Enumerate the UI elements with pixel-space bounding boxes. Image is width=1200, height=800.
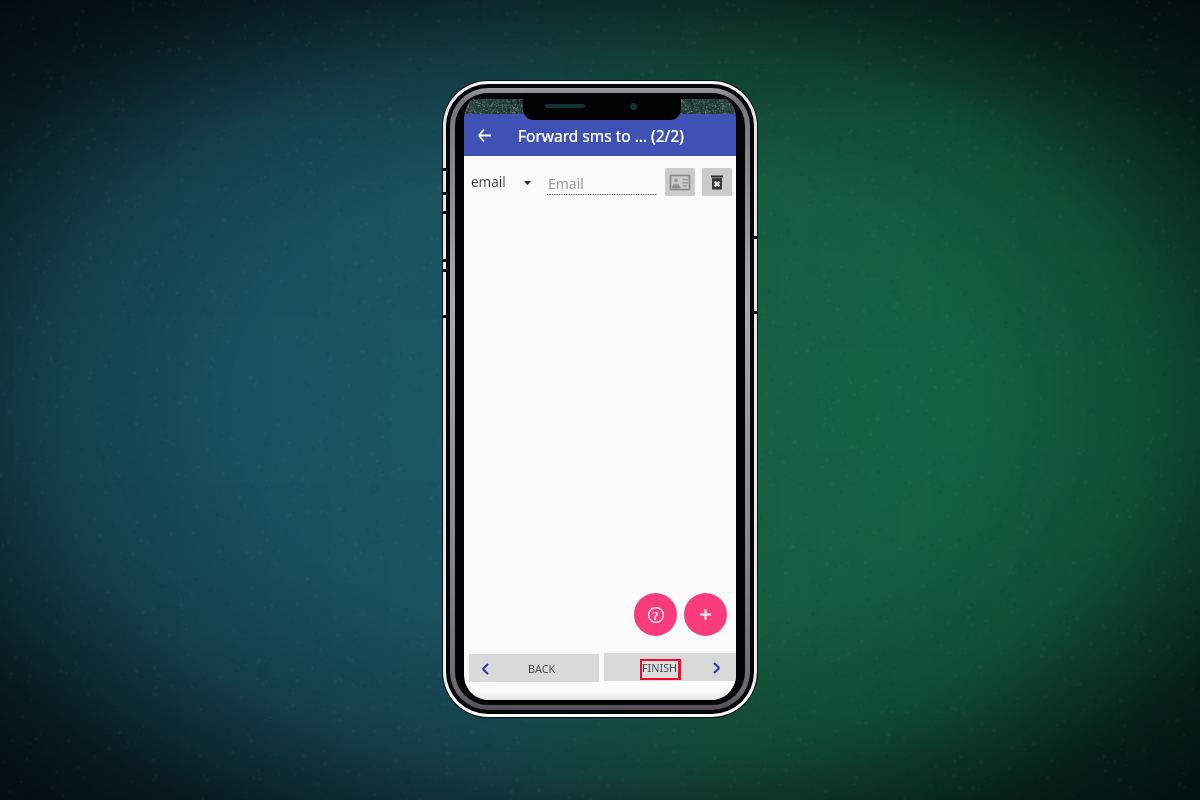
staticText: Email	[548, 174, 584, 193]
staticText: Forward sms to … (2/2)	[518, 125, 684, 146]
button[interactable]: Back	[468, 118, 500, 152]
button[interactable]: Pick contact	[665, 168, 695, 196]
button[interactable]: BACK	[469, 654, 599, 682]
staticText: email	[471, 173, 506, 191]
staticText: ?	[653, 608, 658, 624]
button[interactable]: Clear	[702, 168, 732, 196]
button[interactable]: FINISH	[604, 653, 736, 681]
button[interactable]: Add	[684, 593, 727, 636]
staticText: FINISH	[642, 660, 678, 675]
button[interactable]: email	[467, 164, 537, 194]
button[interactable]: Help	[634, 593, 677, 636]
staticText: BACK	[528, 661, 556, 676]
